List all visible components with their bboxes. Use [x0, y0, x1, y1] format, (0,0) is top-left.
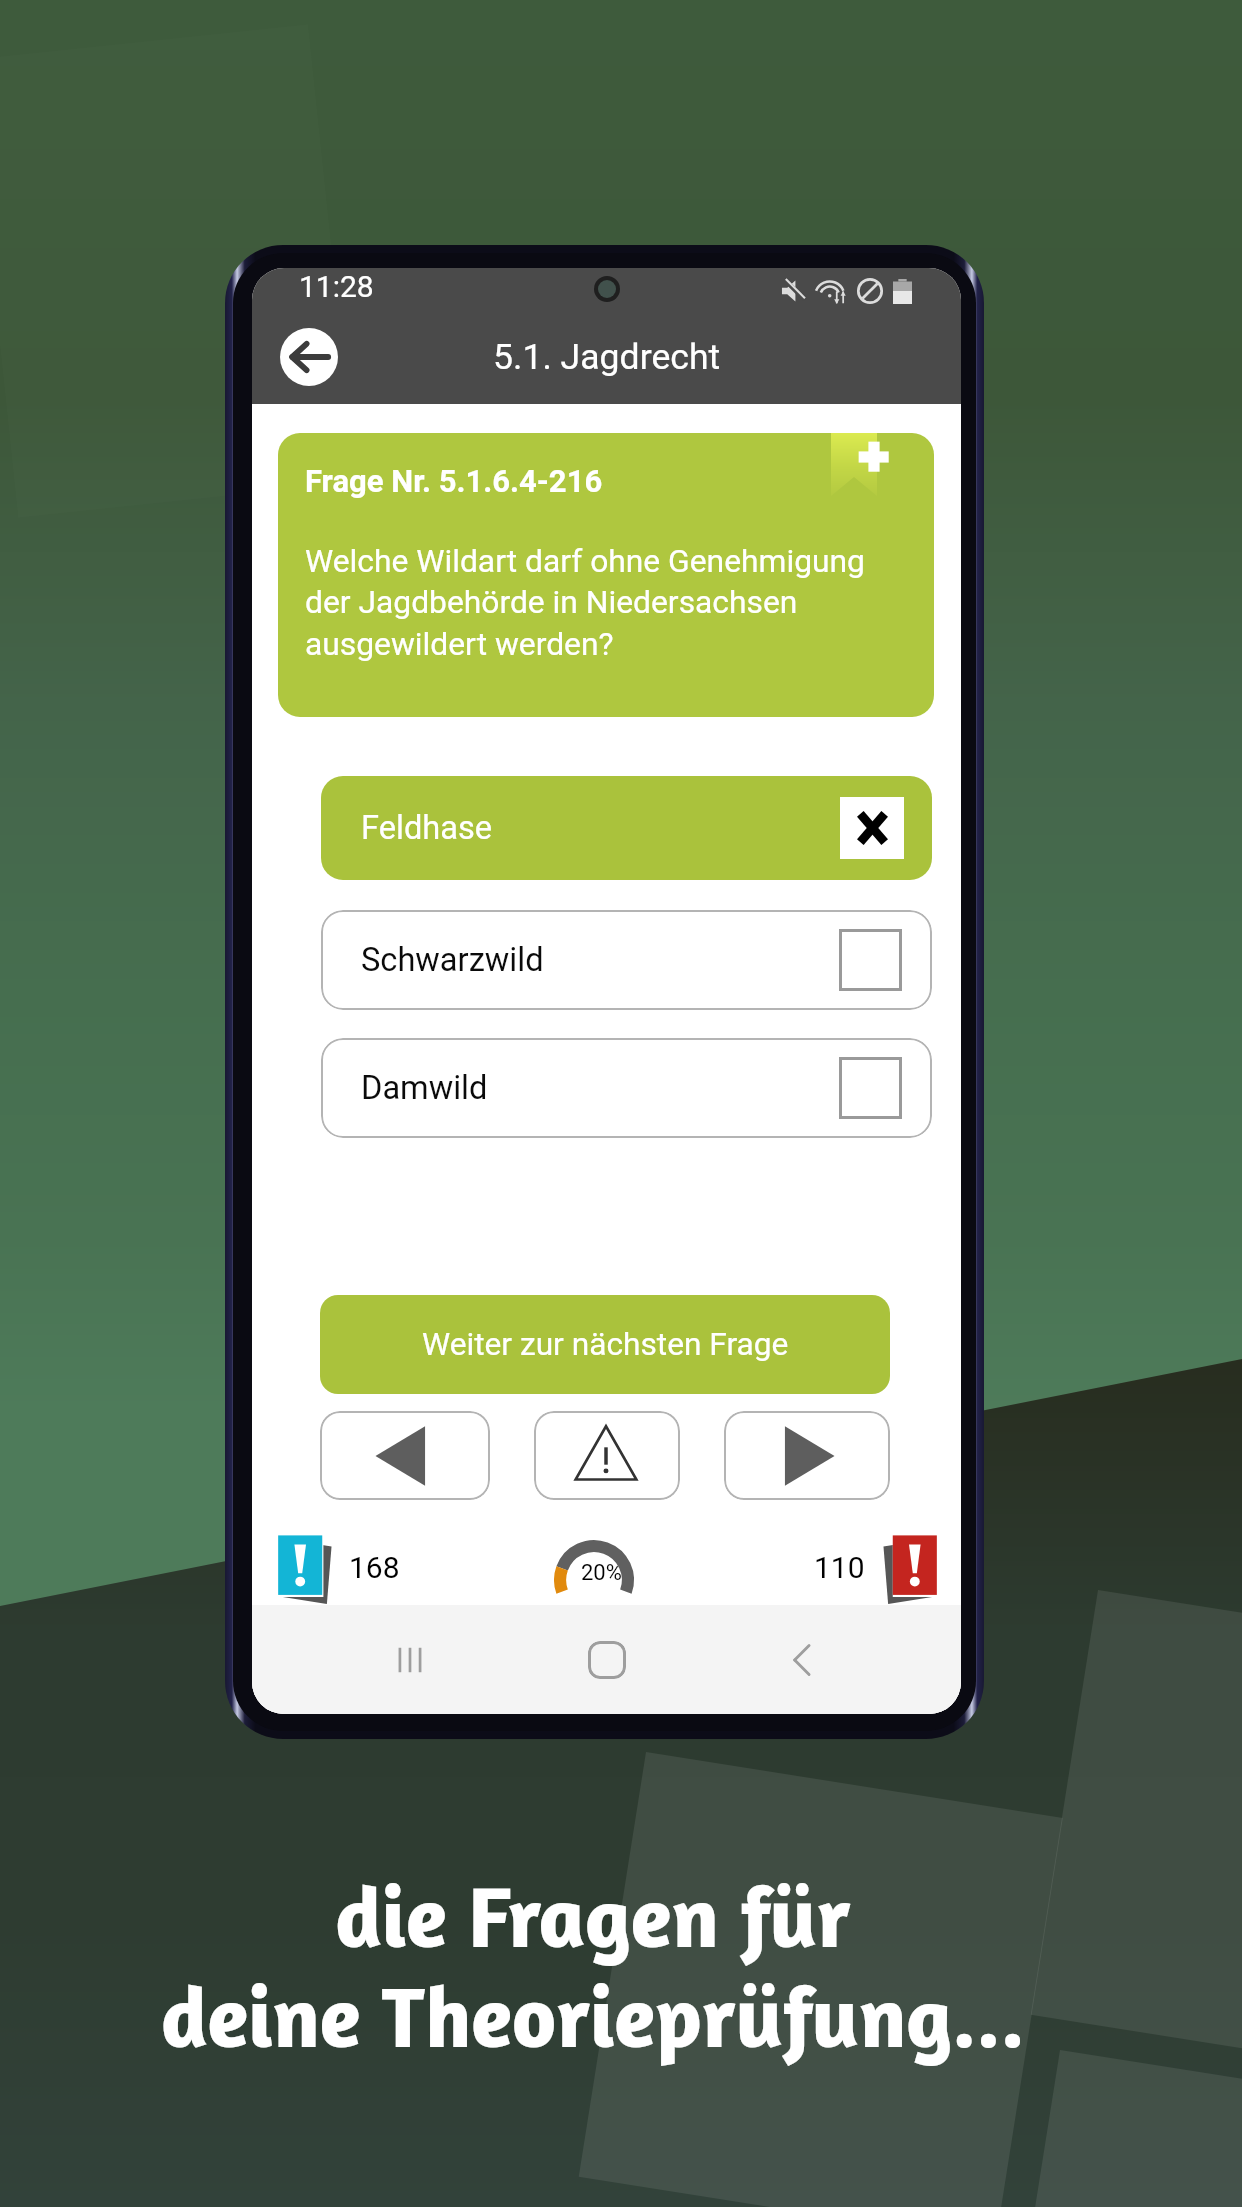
button[interactable]: Recents	[372, 1622, 448, 1698]
button[interactable]: Zurück	[320, 1411, 490, 1500]
button[interactable]: Weiter	[724, 1411, 890, 1500]
staticText: Schwarzwild	[361, 941, 544, 979]
button[interactable]: Back	[765, 1622, 841, 1698]
staticText: 168	[349, 1550, 400, 1585]
button[interactable]: Schwarzwild	[321, 910, 932, 1010]
staticText: Weiter zur nächsten Frage	[422, 1326, 789, 1363]
staticText: die Fragen für deine Theorieprüfung…	[161, 1864, 1025, 2071]
staticText: Damwild	[361, 1069, 488, 1107]
button[interactable]: Damwild	[321, 1038, 932, 1138]
button[interactable]: Home	[569, 1622, 645, 1698]
staticText: 5.1. Jagdrecht	[493, 336, 721, 378]
button[interactable]: Feldhase	[321, 776, 932, 880]
button[interactable]: Weiter zur nächsten Frage	[320, 1295, 890, 1394]
staticText: 11:28	[299, 269, 374, 304]
button[interactable]: Frage Nr. 5.1.6.4-216	[278, 433, 934, 717]
button[interactable]: Melden	[534, 1411, 680, 1500]
staticText: 20%	[581, 1560, 622, 1586]
staticText: Frage Nr. 5.1.6.4-216	[305, 463, 603, 499]
staticText: 110	[814, 1550, 865, 1585]
button[interactable]: Zurück	[280, 328, 338, 386]
staticText: Feldhase	[361, 809, 493, 847]
staticText: Welche Wildart darf ohne Genehmigung der…	[305, 542, 865, 663]
